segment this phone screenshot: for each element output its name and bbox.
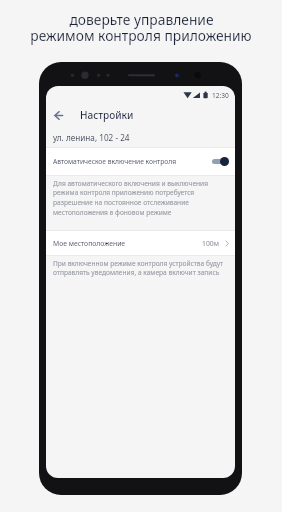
staticText: Для автоматического включения и выключен… <box>53 179 224 217</box>
button[interactable]: Мое местоположение <box>46 231 235 255</box>
staticText: При включенном режиме контроля устройств… <box>53 259 224 277</box>
staticText: Автоматическое включение контроля <box>53 157 177 166</box>
button[interactable]: ул. ленина, 102 - 24 <box>46 126 235 148</box>
staticText: ул. ленина, 102 - 24 <box>53 132 130 143</box>
staticText: 12:30 <box>212 91 229 100</box>
button[interactable]: Назад <box>48 105 68 125</box>
staticText: 100м <box>202 239 219 248</box>
staticText: Настройки <box>80 108 134 122</box>
staticText: Мое местоположение <box>53 239 126 248</box>
button[interactable]: Автоматическое включение контроля <box>46 148 235 175</box>
staticText: доверьте управление <box>69 10 214 29</box>
staticText: режимом контроля приложению <box>30 26 252 45</box>
